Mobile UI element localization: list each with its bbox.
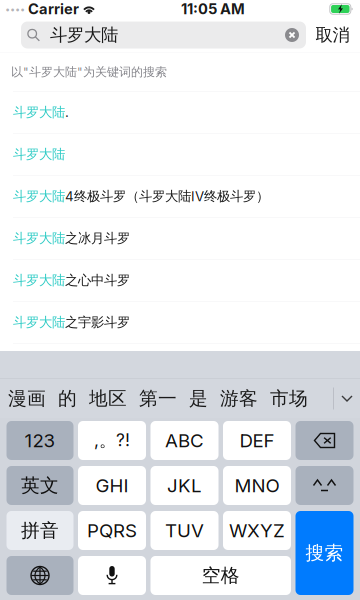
staticText: •••• [5, 3, 25, 15]
staticText: ABC [165, 429, 204, 452]
button[interactable]: 英文 [6, 466, 73, 505]
button[interactable]: 拼音 [6, 511, 73, 550]
staticText: DEF [239, 429, 274, 452]
staticText: Carrier [25, 0, 82, 18]
staticText: PQRS [87, 519, 137, 542]
button[interactable]: WXYZ [223, 511, 291, 550]
staticText: 地区 [89, 387, 127, 410]
button[interactable]: 地区 [89, 379, 127, 418]
button[interactable]: TUV [150, 511, 218, 550]
button[interactable]: Emoticons [295, 466, 353, 505]
button[interactable]: 123 [6, 421, 73, 460]
staticText: 斗罗大陆 [40, 24, 118, 46]
button[interactable]: JKL [150, 466, 218, 505]
staticText: 市场 [270, 387, 308, 410]
staticText: JKL [167, 474, 202, 497]
button[interactable]: 斗罗大陆 [0, 217, 360, 259]
button[interactable]: 斗罗大陆 [0, 301, 360, 343]
button[interactable]: MNO [223, 466, 291, 505]
button[interactable]: More candidates [334, 379, 360, 418]
button[interactable]: 斗罗大陆 [0, 259, 360, 301]
button[interactable]: 搜索 [295, 511, 353, 595]
staticText: 的 [58, 387, 77, 410]
staticText: . [65, 104, 69, 120]
button[interactable]: ,。?! [78, 421, 146, 460]
button[interactable]: PQRS [78, 511, 146, 550]
staticText: 英文 [21, 474, 59, 497]
button[interactable]: 斗罗大陆 [0, 133, 360, 175]
staticText: 123 [24, 429, 55, 452]
button[interactable]: Dictation [78, 556, 146, 595]
staticText: 斗罗大陆 [13, 188, 65, 205]
button[interactable]: 的 [58, 379, 77, 418]
staticText: 空格 [202, 564, 240, 587]
button[interactable]: 漫画 [8, 379, 46, 418]
button[interactable]: Switch keyboard [6, 556, 73, 595]
staticText: 斗罗大陆 [13, 314, 65, 331]
button[interactable]: 是 [189, 379, 208, 418]
staticText: ,。?! [94, 429, 130, 451]
staticText: 斗罗大陆 [13, 230, 65, 247]
staticText: 取消 [315, 24, 349, 46]
staticText: 4终极斗罗（斗罗大陆IV终极斗罗） [65, 188, 269, 205]
button[interactable]: 斗罗大陆 [0, 175, 360, 217]
staticText: 第一 [139, 387, 177, 410]
staticText: 之心中斗罗 [65, 272, 130, 289]
button[interactable]: 市场 [270, 379, 308, 418]
staticText: 漫画 [8, 387, 46, 410]
staticText: 之宇影斗罗 [65, 314, 130, 331]
staticText: GHI [95, 474, 128, 497]
staticText: 11:05 AM [181, 0, 245, 18]
button[interactable]: 斗罗大陆 [0, 91, 360, 133]
staticText: TUV [165, 519, 204, 542]
staticText: 搜索 [305, 541, 343, 565]
button[interactable]: GHI [78, 466, 146, 505]
staticText: 游客 [220, 387, 258, 410]
button[interactable]: 第一 [139, 379, 177, 418]
staticText: MNO [234, 474, 279, 497]
staticText: 以"斗罗大陆"为关键词的搜索 [11, 64, 167, 79]
staticText: 是 [189, 387, 208, 410]
button[interactable]: 空格 [150, 556, 291, 595]
staticText: 之冰月斗罗 [65, 230, 130, 247]
staticText: 斗罗大陆 [13, 104, 65, 121]
button[interactable]: Clear text [285, 28, 299, 42]
staticText: 拼音 [21, 519, 59, 542]
button[interactable]: ABC [150, 421, 218, 460]
staticText: 斗罗大陆 [13, 272, 65, 289]
staticText: 斗罗大陆 [13, 146, 65, 163]
button[interactable]: 取消 [313, 18, 352, 52]
button[interactable]: DEF [223, 421, 291, 460]
button[interactable]: Delete [295, 421, 353, 460]
button[interactable]: 游客 [220, 379, 258, 418]
staticText: WXYZ [229, 519, 285, 542]
